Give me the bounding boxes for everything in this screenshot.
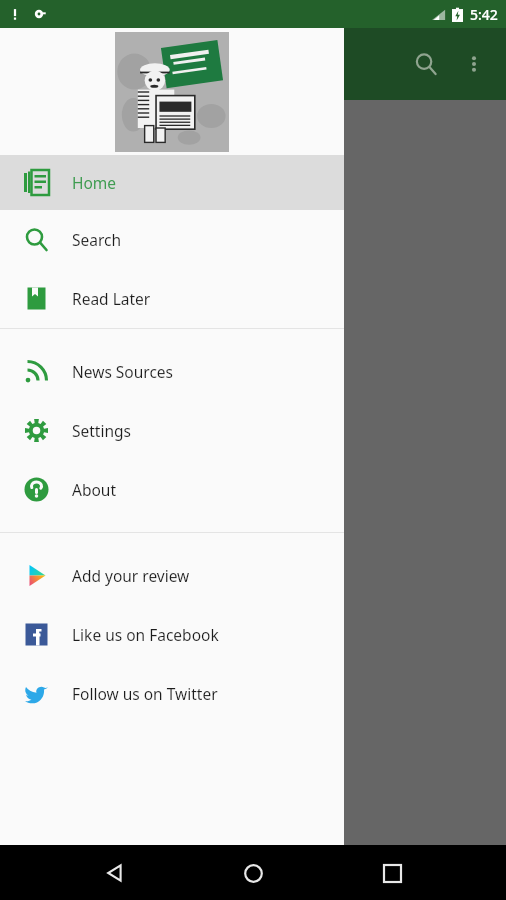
button[interactable]: Add your review: [0, 546, 344, 605]
button[interactable]: More options: [450, 40, 498, 88]
staticText: Read Later: [72, 288, 151, 309]
staticText: Like us on Facebook: [72, 624, 219, 645]
staticText: Add your review: [72, 565, 190, 586]
button[interactable]: Back: [91, 849, 139, 897]
button[interactable]: Home: [0, 155, 344, 210]
staticText: Home: [72, 172, 117, 193]
staticText: News Sources: [72, 361, 174, 382]
button[interactable]: Settings: [0, 401, 344, 460]
button[interactable]: Search: [0, 210, 344, 269]
button[interactable]: About: [0, 460, 344, 519]
staticText: Search: [72, 229, 122, 250]
button[interactable]: News Sources: [0, 342, 344, 401]
button[interactable]: Recent apps: [368, 849, 416, 897]
button[interactable]: Search: [402, 40, 450, 88]
staticText: Follow us on Twitter: [72, 683, 218, 704]
staticText: 5:42: [470, 5, 498, 24]
button[interactable]: Home: [229, 849, 277, 897]
button[interactable]: Like us on Facebook: [0, 605, 344, 664]
button[interactable]: Follow us on Twitter: [0, 664, 344, 723]
staticText: About: [72, 479, 116, 500]
button[interactable]: Read Later: [0, 269, 344, 328]
staticText: Settings: [72, 420, 131, 441]
